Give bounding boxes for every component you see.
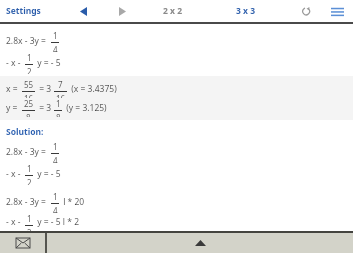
button[interactable]: Settings <box>0 0 45 22</box>
staticText: 4 <box>53 155 58 163</box>
button[interactable]: 2 x 2 <box>158 0 188 22</box>
staticText: 55 <box>24 79 34 90</box>
staticText: = 3 <box>37 102 52 114</box>
staticText: - x - <box>6 216 23 228</box>
button[interactable]: Undo <box>295 0 317 22</box>
staticText: (y = 3.125) <box>64 102 107 114</box>
staticText: 1 <box>27 52 32 63</box>
staticText: 2 x 2 <box>163 5 183 17</box>
staticText: y = - 5 l * 2 <box>35 216 80 228</box>
staticText: l * 20 <box>61 196 85 208</box>
staticText: 1 <box>53 191 58 202</box>
staticText: Solution: <box>6 126 44 138</box>
staticText: 16 <box>56 93 66 98</box>
button[interactable]: Expand <box>47 233 353 253</box>
staticText: (x = 3.4375) <box>69 83 117 95</box>
staticText: 1 <box>56 98 61 109</box>
staticText: = 3 <box>37 83 52 95</box>
staticText: 1 <box>27 163 32 174</box>
staticText: 1 <box>53 30 58 41</box>
button[interactable]: 3 x 3 <box>231 0 261 22</box>
staticText: 16 <box>24 93 34 98</box>
staticText: 4 <box>53 205 58 213</box>
staticText: 2 <box>27 177 32 185</box>
staticText: 2.8x - 3y = <box>6 35 49 47</box>
staticText: 1 <box>27 213 32 224</box>
staticText: 3 x 3 <box>236 5 256 17</box>
staticText: Settings <box>6 5 41 17</box>
staticText: 2.8x - 3y = <box>6 146 49 158</box>
staticText: 8 <box>56 112 61 117</box>
staticText: 2.8x - 3y = <box>6 196 49 208</box>
staticText: 2 <box>27 227 32 231</box>
staticText: y = <box>6 102 20 114</box>
staticText: - x - <box>6 57 23 69</box>
staticText: 1 <box>53 141 58 152</box>
staticText: - x - <box>6 168 23 180</box>
staticText: 7 <box>58 79 63 90</box>
button[interactable]: Menu <box>325 0 349 22</box>
staticText: x = <box>6 83 20 95</box>
button[interactable]: Mail <box>0 233 45 253</box>
staticText: y = - 5 <box>35 57 61 69</box>
staticText: y = - 5 <box>35 168 61 180</box>
staticText: 2 <box>27 66 32 74</box>
staticText: 25 <box>24 98 34 109</box>
staticText: 4 <box>53 44 58 52</box>
button[interactable]: Next <box>112 0 132 22</box>
staticText: 8 <box>26 112 31 117</box>
button[interactable]: Previous <box>73 0 93 22</box>
